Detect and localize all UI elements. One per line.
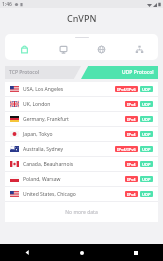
staticText: Japan, Tokyo <box>23 131 53 138</box>
button[interactable]: Devices <box>44 38 82 60</box>
staticText: UK, London <box>23 101 51 108</box>
staticText: UDP <box>142 117 151 122</box>
staticText: Australia, Sydney <box>23 146 64 153</box>
staticText: Canada, Beauharnois <box>23 161 74 168</box>
staticText: TCP Protocol <box>9 69 40 76</box>
button[interactable]: Poland, Warsaw <box>5 172 158 186</box>
staticText: UDP <box>142 87 151 92</box>
staticText: Poland, Warsaw <box>23 176 61 183</box>
button[interactable]: Globe <box>82 38 120 60</box>
button[interactable]: Share <box>120 38 158 60</box>
button[interactable]: Recent apps <box>109 244 163 261</box>
staticText: United States, Chicago <box>23 191 76 198</box>
button[interactable]: Home <box>55 244 109 261</box>
button[interactable]: UK, London <box>5 97 158 111</box>
staticText: IPv4 <box>127 117 136 122</box>
staticText: IPv4 <box>127 177 136 182</box>
button[interactable]: Canada, Beauharnois <box>5 157 158 171</box>
button[interactable]: Back <box>0 244 55 261</box>
staticText: IPv4 <box>127 192 136 197</box>
staticText: IPv4 <box>127 102 136 107</box>
staticText: UDP <box>142 192 151 197</box>
button[interactable]: UDP Protocol <box>81 66 158 79</box>
staticText: IPv4/IPv6 <box>117 147 136 152</box>
staticText: UDP <box>142 162 151 167</box>
staticText: UDP <box>142 102 151 107</box>
staticText: 1:46 <box>2 1 12 8</box>
button[interactable]: USA, Los Angeles <box>5 82 158 96</box>
button[interactable]: Japan, Tokyo <box>5 127 158 141</box>
staticText: UDP <box>142 132 151 137</box>
button[interactable]: United States, Chicago <box>5 187 158 201</box>
staticText: UDP <box>142 177 151 182</box>
staticText: IPv4/IPv6 <box>117 87 136 92</box>
staticText: USA, Los Angeles <box>23 86 64 93</box>
staticText: IPv4 <box>127 132 136 137</box>
button[interactable]: Germany, Frankfurt <box>5 112 158 126</box>
staticText: CnVPN <box>67 12 97 24</box>
button[interactable]: Home <box>5 38 44 60</box>
staticText: Germany, Frankfurt <box>23 116 69 123</box>
staticText: IPv4 <box>127 162 136 167</box>
button[interactable]: Australia, Sydney <box>5 142 158 156</box>
staticText: No more data <box>65 209 98 216</box>
staticText: UDP <box>142 147 151 152</box>
button[interactable]: TCP Protocol <box>5 66 81 79</box>
staticText: UDP Protocol <box>122 69 154 76</box>
